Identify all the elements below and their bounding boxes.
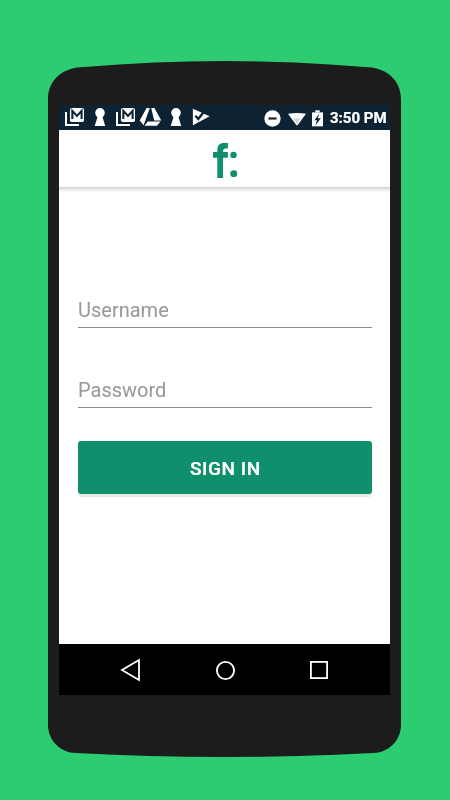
button[interactable]: SIGN IN [78, 441, 372, 494]
button[interactable]: Username [78, 293, 372, 328]
button[interactable]: Recents [295, 646, 343, 694]
staticText: Username [78, 298, 169, 321]
button[interactable]: Home [201, 646, 249, 694]
staticText: Password [78, 378, 167, 401]
button[interactable]: Password [78, 373, 372, 408]
staticText: SIGN IN [190, 457, 261, 479]
button[interactable]: Back [106, 646, 154, 694]
staticText: 3:50 PM [330, 109, 387, 127]
